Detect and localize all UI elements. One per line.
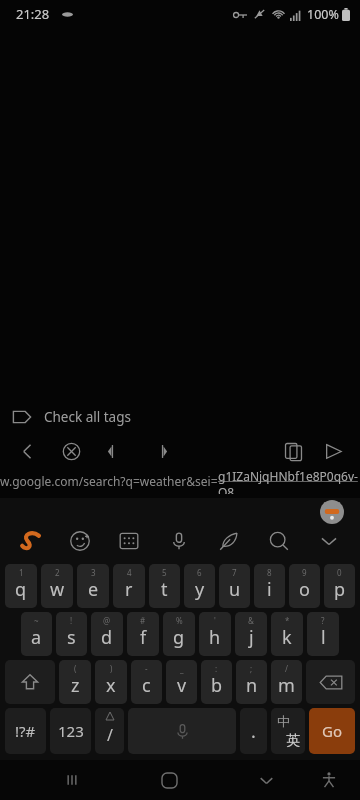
staticText: 21:28 <box>16 5 50 23</box>
button[interactable]: - <box>131 660 162 704</box>
button[interactable]: ? <box>307 612 339 656</box>
staticText: . <box>251 719 256 744</box>
button[interactable]: * <box>271 612 303 656</box>
staticText: q <box>15 577 27 602</box>
button[interactable]: !?# <box>5 708 46 754</box>
button[interactable]: 0 <box>324 564 355 608</box>
button[interactable]: Search <box>254 522 304 560</box>
button[interactable]: Back <box>246 760 286 800</box>
button[interactable]: Sogou <box>6 522 55 560</box>
button[interactable]: ~ <box>21 612 52 656</box>
button[interactable]: ) <box>95 660 127 704</box>
button[interactable]: Emoji <box>55 522 104 560</box>
button[interactable]: Accessibility <box>312 763 346 797</box>
staticText: ~ <box>34 615 39 626</box>
staticText: 7 <box>232 567 237 578</box>
button[interactable]: / <box>271 660 302 704</box>
button[interactable]: Recents <box>52 760 92 800</box>
staticText: & <box>248 615 254 626</box>
staticText: r <box>125 577 133 602</box>
button[interactable]: Send <box>318 436 348 466</box>
staticText: 中 <box>277 713 290 729</box>
staticText: / <box>285 663 288 674</box>
button[interactable]: 6 <box>184 564 215 608</box>
button[interactable]: 2 <box>41 564 73 608</box>
staticText: l <box>321 625 326 650</box>
staticText: s <box>67 625 76 650</box>
staticText: 6 <box>197 567 202 578</box>
staticText: 4 <box>127 567 132 578</box>
staticText: k <box>282 625 292 650</box>
button[interactable]: Handwriting <box>204 522 254 560</box>
staticText: j <box>249 625 254 650</box>
staticText: d <box>101 625 113 650</box>
staticText: 123 <box>58 721 84 741</box>
staticText: p <box>334 577 346 602</box>
button[interactable]: : <box>201 660 232 704</box>
staticText: m <box>278 673 295 698</box>
staticText: g <box>173 625 185 650</box>
button[interactable]: 123 <box>50 708 91 754</box>
button[interactable]: ( <box>59 660 91 704</box>
staticText: i <box>267 577 272 602</box>
button[interactable]: Shift <box>5 660 55 704</box>
button[interactable]: @ <box>91 612 123 656</box>
button[interactable]: Voice input <box>154 522 204 560</box>
staticText: ' <box>214 615 216 626</box>
button[interactable]: Clipboard <box>104 522 154 560</box>
staticText: Check all tags <box>44 408 131 426</box>
button[interactable]: ; <box>236 660 267 704</box>
button[interactable]: 7 <box>219 564 250 608</box>
button[interactable]: w.google.com/search?q=weather&sei= <box>0 468 360 494</box>
staticText: / <box>107 724 113 746</box>
button[interactable]: Clear <box>56 436 86 466</box>
staticText: ) <box>110 663 113 674</box>
staticText: x <box>106 673 116 698</box>
staticText: g1IZaNjqHNbf1e8P0q6v-Q8 <box>218 468 360 494</box>
staticText: ! <box>70 615 73 626</box>
button[interactable]: Copy <box>278 436 308 466</box>
button[interactable]: 4 <box>113 564 145 608</box>
staticText: : <box>215 663 218 674</box>
staticText: 3 <box>91 567 96 578</box>
button[interactable]: 8 <box>254 564 285 608</box>
staticText: 2 <box>55 567 60 578</box>
button[interactable]: ' <box>199 612 231 656</box>
button[interactable]: % <box>163 612 195 656</box>
button[interactable]: ! <box>56 612 87 656</box>
button[interactable]: Go <box>309 708 355 754</box>
staticText: y <box>195 577 205 602</box>
staticText: 0 <box>337 567 342 578</box>
staticText: !?# <box>15 721 36 741</box>
button[interactable]: # <box>127 612 159 656</box>
staticText: Go <box>322 721 342 741</box>
button[interactable]: 9 <box>289 564 320 608</box>
button[interactable]: Backspace <box>306 660 355 704</box>
button[interactable]: / <box>95 708 124 754</box>
staticText: b <box>211 673 223 698</box>
staticText: ( <box>74 663 77 674</box>
staticText: @ <box>103 615 111 626</box>
button[interactable]: Cursor right <box>144 436 174 466</box>
button[interactable]: Space <box>128 708 236 754</box>
staticText: a <box>31 625 42 650</box>
staticText: f <box>140 625 147 650</box>
button[interactable]: Switch language <box>271 708 305 754</box>
button[interactable]: 5 <box>149 564 180 608</box>
staticText: _ <box>180 663 184 674</box>
button[interactable]: 3 <box>77 564 109 608</box>
button[interactable]: Cursor left <box>100 436 130 466</box>
button[interactable]: Home <box>149 760 189 800</box>
button[interactable]: Check all tags <box>0 400 360 434</box>
staticText: h <box>209 625 221 650</box>
button[interactable]: . <box>240 708 267 754</box>
button[interactable]: Back <box>12 436 42 466</box>
staticText: z <box>71 673 80 698</box>
button[interactable]: 1 <box>5 564 37 608</box>
button[interactable]: _ <box>166 660 197 704</box>
button[interactable]: & <box>235 612 267 656</box>
staticText: # <box>140 615 146 626</box>
button[interactable]: Hide keyboard <box>304 522 354 560</box>
staticText: ? <box>321 615 325 626</box>
button[interactable]: Account <box>320 500 344 524</box>
